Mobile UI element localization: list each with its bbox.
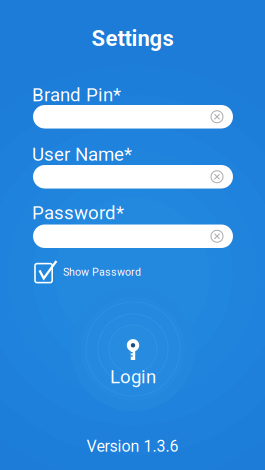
staticText: Version 1.3.6 bbox=[86, 437, 178, 456]
button[interactable] bbox=[33, 224, 233, 248]
button[interactable]: Show Password bbox=[35, 261, 141, 283]
button[interactable] bbox=[33, 165, 233, 188]
button[interactable] bbox=[33, 105, 233, 128]
staticText: Settings bbox=[91, 25, 173, 51]
staticText: Login bbox=[110, 366, 156, 388]
staticText: Show Password bbox=[63, 266, 141, 278]
staticText: Password* bbox=[32, 202, 124, 224]
button[interactable]: Login bbox=[68, 339, 198, 388]
staticText: User Name* bbox=[32, 143, 132, 165]
staticText: Brand Pin* bbox=[32, 84, 121, 106]
